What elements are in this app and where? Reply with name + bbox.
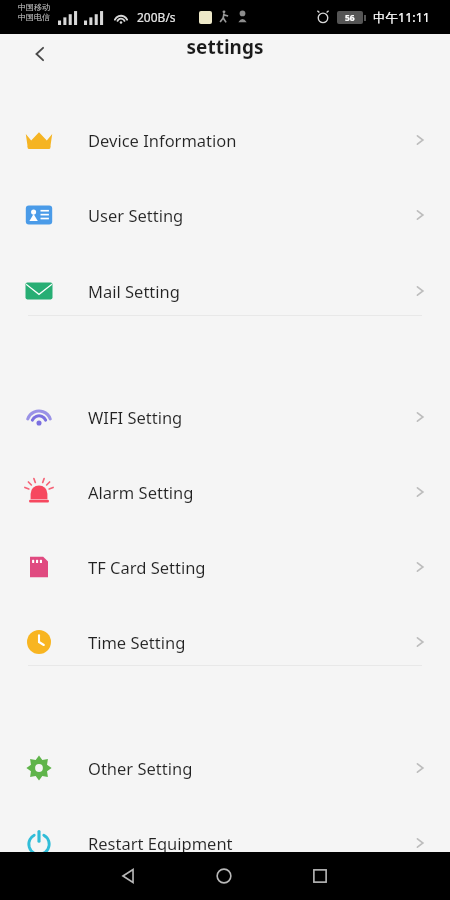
staticText: Mail Setting: [88, 280, 180, 302]
staticText: Time Setting: [88, 631, 186, 653]
button[interactable]: Back: [104, 852, 152, 900]
staticText: Device Information: [88, 129, 237, 151]
button[interactable]: Other Setting: [0, 730, 450, 805]
button[interactable]: Device Information: [0, 102, 450, 177]
staticText: Alarm Setting: [88, 481, 194, 503]
staticText: 中国电信: [18, 12, 50, 22]
staticText: Other Setting: [88, 757, 193, 779]
button[interactable]: Restart Equipment: [0, 805, 450, 880]
staticText: Restart Equipment: [88, 832, 233, 854]
staticText: User Setting: [88, 204, 184, 226]
staticText: 中午11:11: [373, 9, 430, 26]
button[interactable]: Back: [20, 34, 60, 74]
button[interactable]: Time Setting: [0, 604, 450, 679]
staticText: WIFI Setting: [88, 406, 183, 428]
staticText: TF Card Setting: [88, 556, 206, 578]
staticText: 中国移动: [18, 2, 50, 12]
button[interactable]: Home: [200, 852, 248, 900]
button[interactable]: User Setting: [0, 177, 450, 252]
button[interactable]: TF Card Setting: [0, 529, 450, 604]
button[interactable]: Alarm Setting: [0, 454, 450, 529]
staticText: 200B/s: [137, 9, 176, 25]
staticText: settings: [0, 34, 450, 60]
staticText: 56: [345, 12, 355, 24]
button[interactable]: Recents: [296, 852, 344, 900]
button[interactable]: WIFI Setting: [0, 379, 450, 454]
button[interactable]: Mail Setting: [0, 253, 450, 328]
